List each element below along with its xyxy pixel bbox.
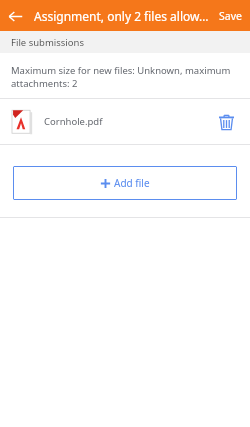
button[interactable]: Add file xyxy=(13,166,237,200)
button[interactable]: Back xyxy=(0,1,30,31)
button[interactable]: Save xyxy=(211,3,250,29)
staticText: File submissions xyxy=(11,36,84,49)
staticText: Add file xyxy=(114,176,150,190)
button[interactable]: Delete file xyxy=(209,105,243,139)
staticText: Maximum size for new files: Unknown, max… xyxy=(11,64,238,90)
staticText: Save xyxy=(219,9,242,23)
staticText: Assignment, only 2 files allow… xyxy=(34,8,211,24)
button[interactable]: Cornhole.pdf xyxy=(0,99,250,144)
staticText: Cornhole.pdf xyxy=(44,115,209,128)
